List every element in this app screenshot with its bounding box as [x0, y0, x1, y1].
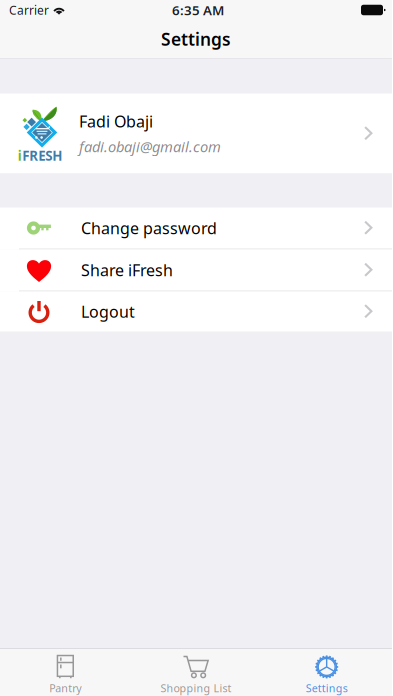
- staticText: Share iFresh: [81, 259, 173, 281]
- staticText: i: [18, 147, 22, 164]
- button[interactable]: Pantry: [0, 649, 131, 696]
- staticText: Fadi Obaji: [79, 111, 153, 132]
- staticText: Settings: [161, 27, 231, 50]
- staticText: Pantry: [49, 681, 81, 695]
- staticText: FRESH: [22, 147, 62, 164]
- button[interactable]: Shopping List: [131, 649, 261, 696]
- button[interactable]: Logout: [0, 291, 392, 331]
- button[interactable]: i: [0, 93, 392, 173]
- staticText: 6:35 AM: [172, 1, 224, 19]
- button[interactable]: Share iFresh: [0, 249, 392, 291]
- staticText: Logout: [81, 301, 135, 322]
- button[interactable]: Settings: [261, 649, 392, 696]
- staticText: fadi.obaji@gmail.com: [79, 137, 221, 156]
- staticText: Change password: [81, 217, 217, 239]
- button[interactable]: Change password: [0, 207, 392, 249]
- staticText: Settings: [306, 681, 348, 695]
- staticText: Carrier: [9, 2, 49, 18]
- staticText: Shopping List: [160, 681, 231, 695]
